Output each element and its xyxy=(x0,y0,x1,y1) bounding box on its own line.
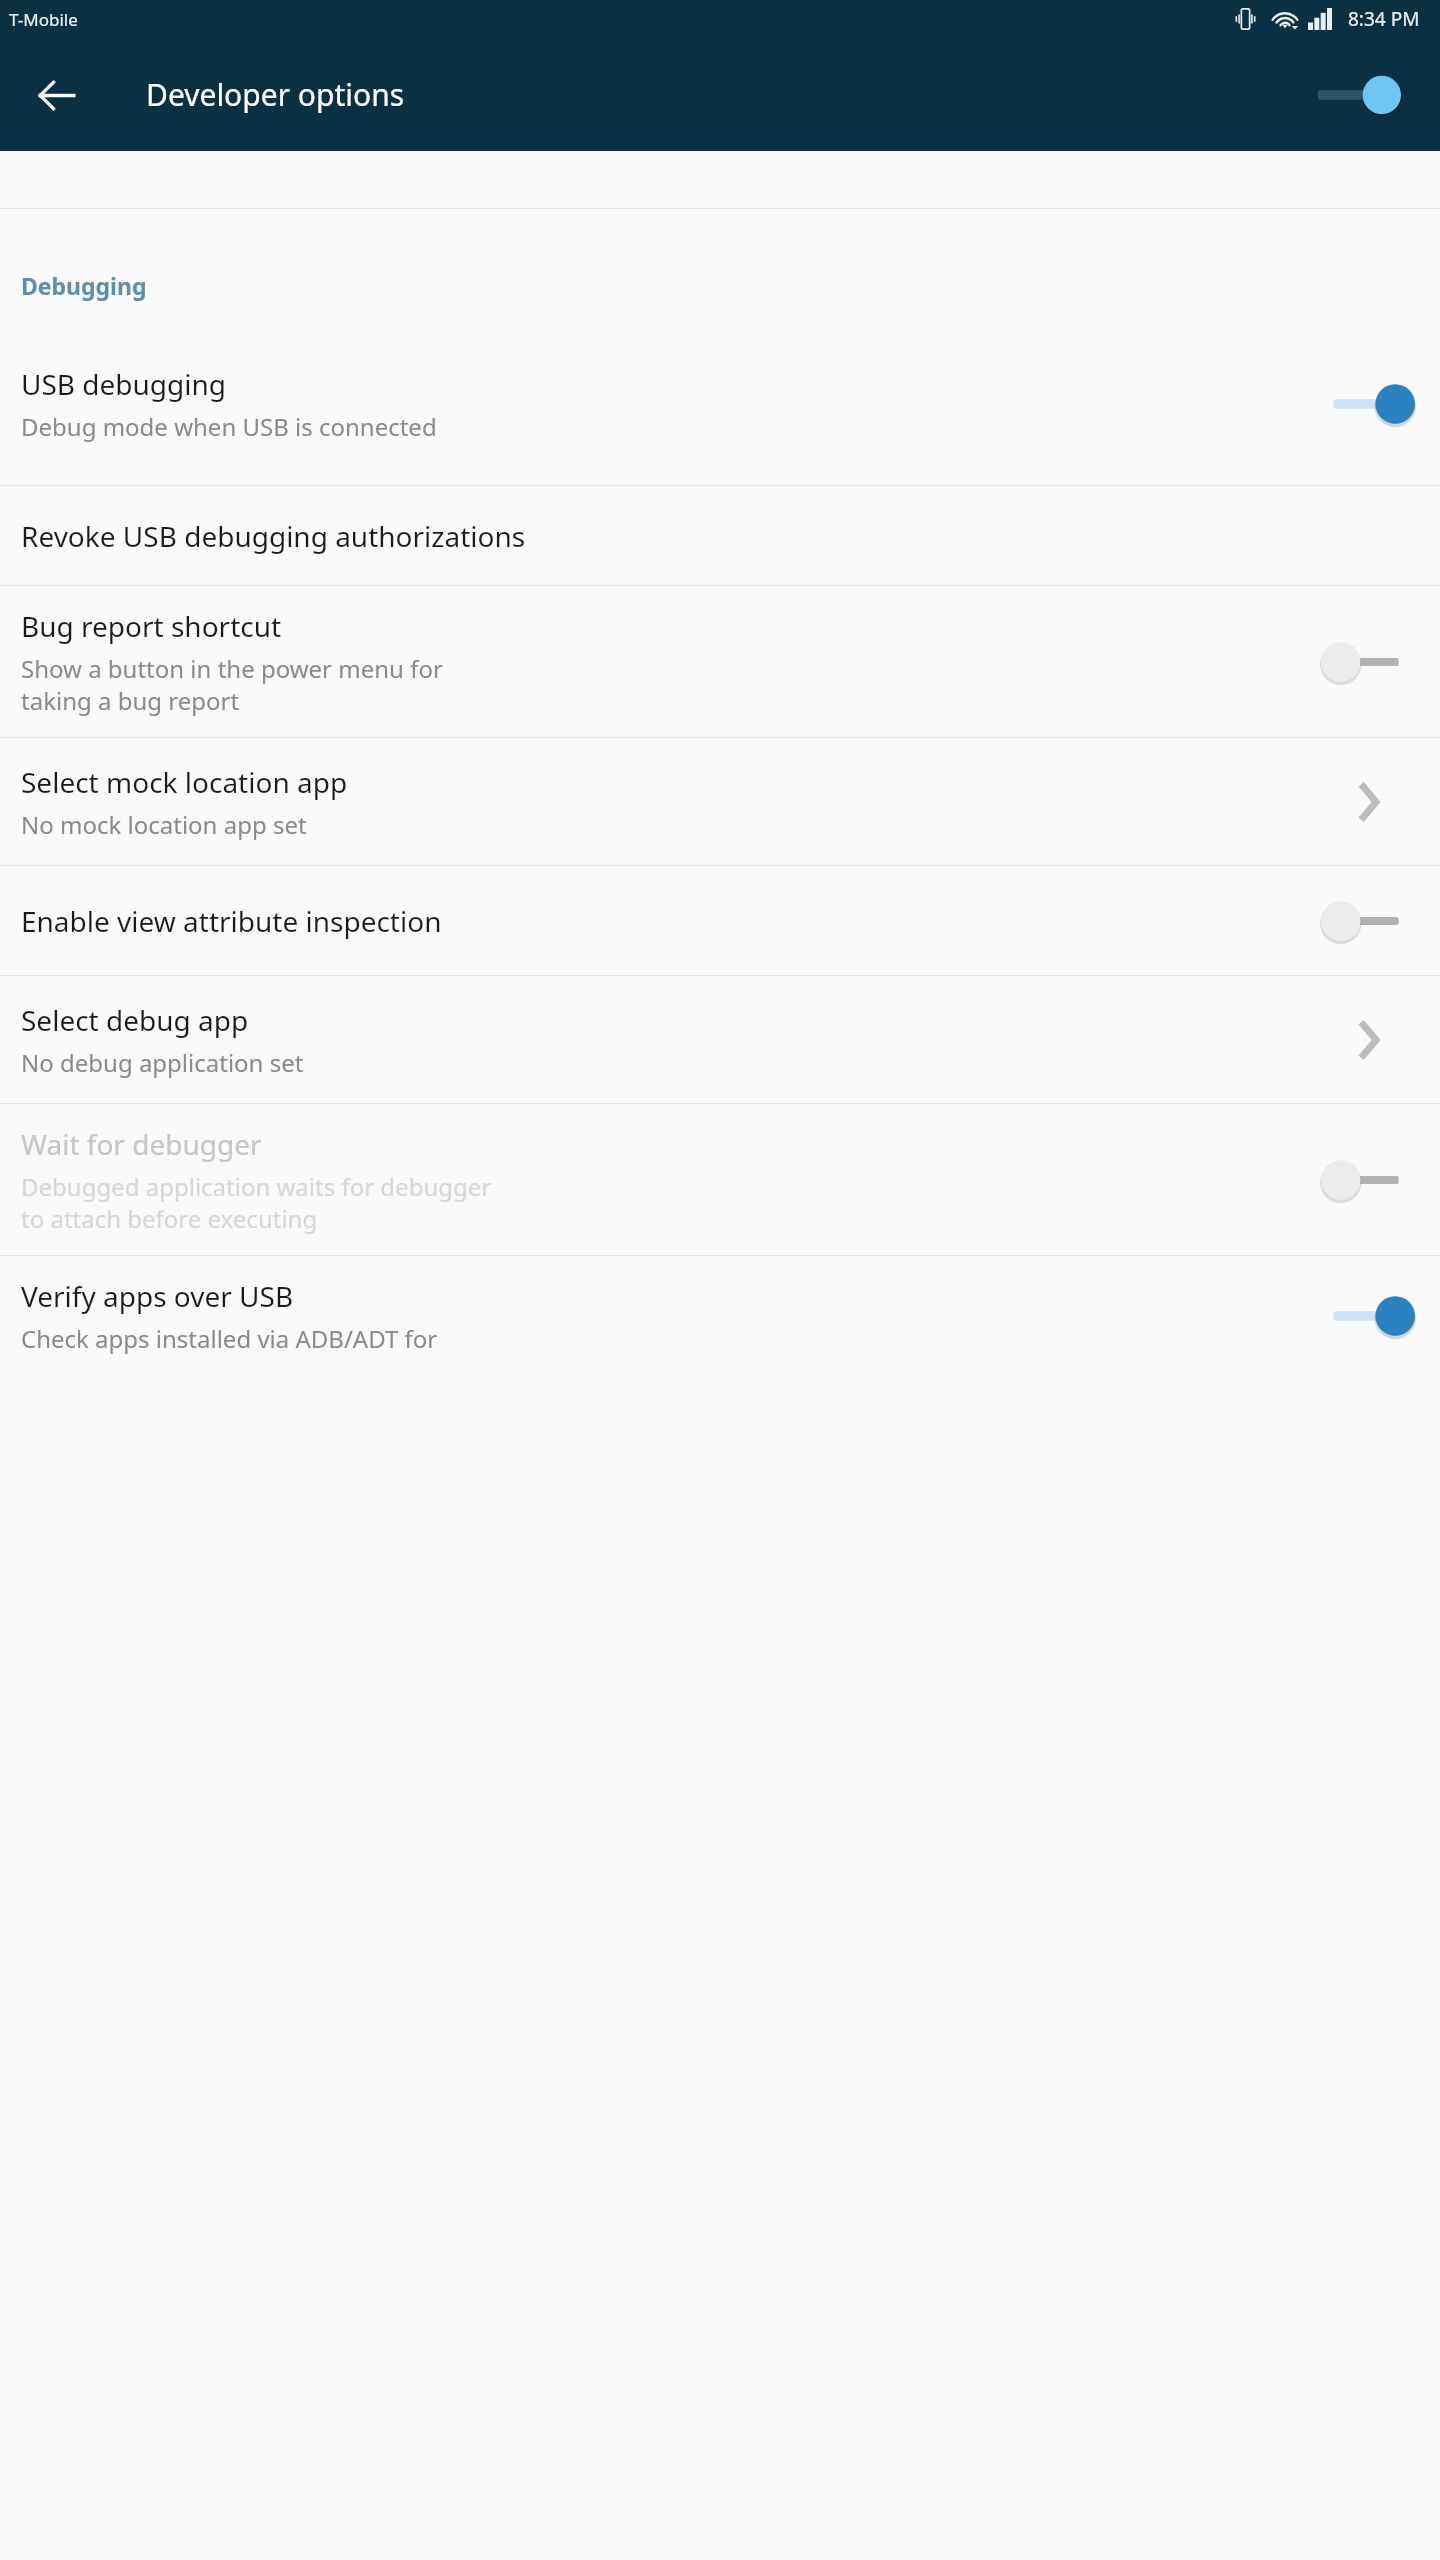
staticText: T-Mobile xyxy=(9,8,78,31)
staticText: Debug mode when USB is connected xyxy=(21,410,437,443)
staticText: No mock location app set xyxy=(21,808,307,841)
staticText: Select mock location app xyxy=(21,763,348,801)
staticText: Verify apps over USB xyxy=(21,1277,294,1315)
button[interactable]: Select debug app xyxy=(0,976,1440,1103)
staticText: USB debugging xyxy=(21,365,227,403)
staticText: Developer options xyxy=(146,74,405,115)
staticText: Bug report shortcut xyxy=(21,607,282,645)
button[interactable]: Toggle developer options xyxy=(1294,50,1402,140)
button[interactable]: Select mock location app xyxy=(0,738,1440,865)
button[interactable]: Back xyxy=(20,59,92,131)
button[interactable]: Bug report shortcut xyxy=(0,586,1440,737)
staticText: Debugging xyxy=(21,270,147,301)
button[interactable]: Revoke USB debugging authorizations xyxy=(0,486,1440,585)
staticText: Wait for debugger xyxy=(21,1125,262,1163)
staticText: No debug application set xyxy=(21,1046,304,1079)
staticText: Show a button in the power menu for taki… xyxy=(21,652,443,717)
staticText: Check apps installed via ADB/ADT for xyxy=(21,1322,438,1355)
staticText: Enable view attribute inspection xyxy=(21,902,442,940)
button[interactable]: Verify apps over USB xyxy=(0,1256,1440,1376)
button[interactable]: Wait for debugger xyxy=(0,1104,1440,1255)
staticText: Revoke USB debugging authorizations xyxy=(21,517,526,555)
staticText: Select debug app xyxy=(21,1001,249,1039)
staticText: 8:34 PM xyxy=(1348,6,1420,32)
button[interactable]: Enable view attribute inspection xyxy=(0,866,1440,975)
staticText: Debugged application waits for debugger … xyxy=(21,1170,492,1235)
button[interactable]: USB debugging xyxy=(0,322,1440,485)
